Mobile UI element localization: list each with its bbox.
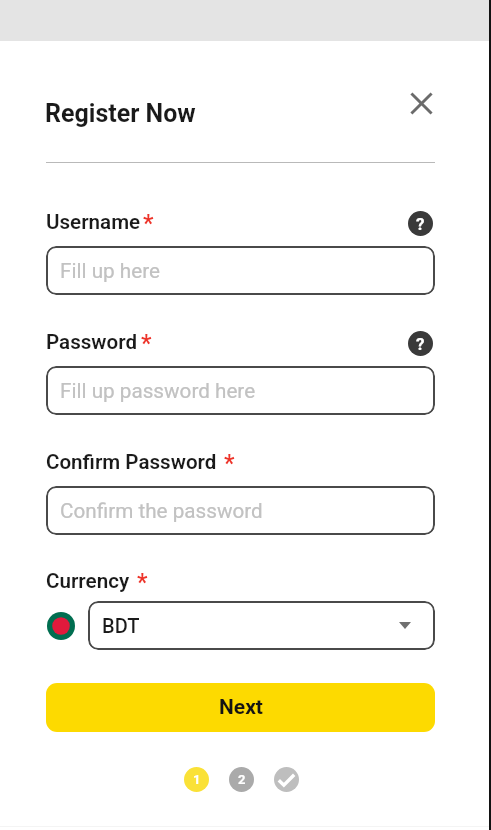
staticText: *	[143, 210, 154, 237]
button[interactable]: Fill up password here	[46, 366, 435, 415]
staticText: 1	[193, 772, 201, 787]
staticText: *	[224, 450, 235, 477]
staticText: Confirm Password	[46, 450, 217, 474]
staticText: Password	[46, 330, 138, 354]
button[interactable]: Next	[46, 683, 435, 732]
button[interactable]: Close	[406, 88, 437, 119]
staticText: ?	[416, 334, 425, 354]
staticText: Fill up password here	[60, 379, 256, 403]
staticText: Currency	[46, 569, 130, 593]
staticText: Fill up here	[60, 259, 160, 283]
button[interactable]: Help	[408, 211, 433, 236]
button[interactable]: Confirm the password	[46, 486, 435, 535]
button[interactable]: Step	[184, 767, 209, 792]
staticText: BDT	[102, 614, 140, 637]
button[interactable]: BDT	[88, 601, 435, 650]
staticText: *	[141, 330, 152, 357]
staticText: Next	[219, 695, 263, 720]
staticText: ?	[416, 214, 425, 234]
staticText: Register Now	[45, 99, 196, 128]
button[interactable]: Help	[408, 331, 433, 356]
button[interactable]: Fill up here	[46, 246, 435, 295]
staticText: Username	[46, 210, 141, 234]
staticText: Confirm the password	[60, 499, 263, 523]
staticText: 2	[238, 772, 246, 787]
button[interactable]: Step	[274, 767, 299, 792]
staticText: *	[137, 569, 148, 596]
button[interactable]: Step	[229, 767, 254, 792]
